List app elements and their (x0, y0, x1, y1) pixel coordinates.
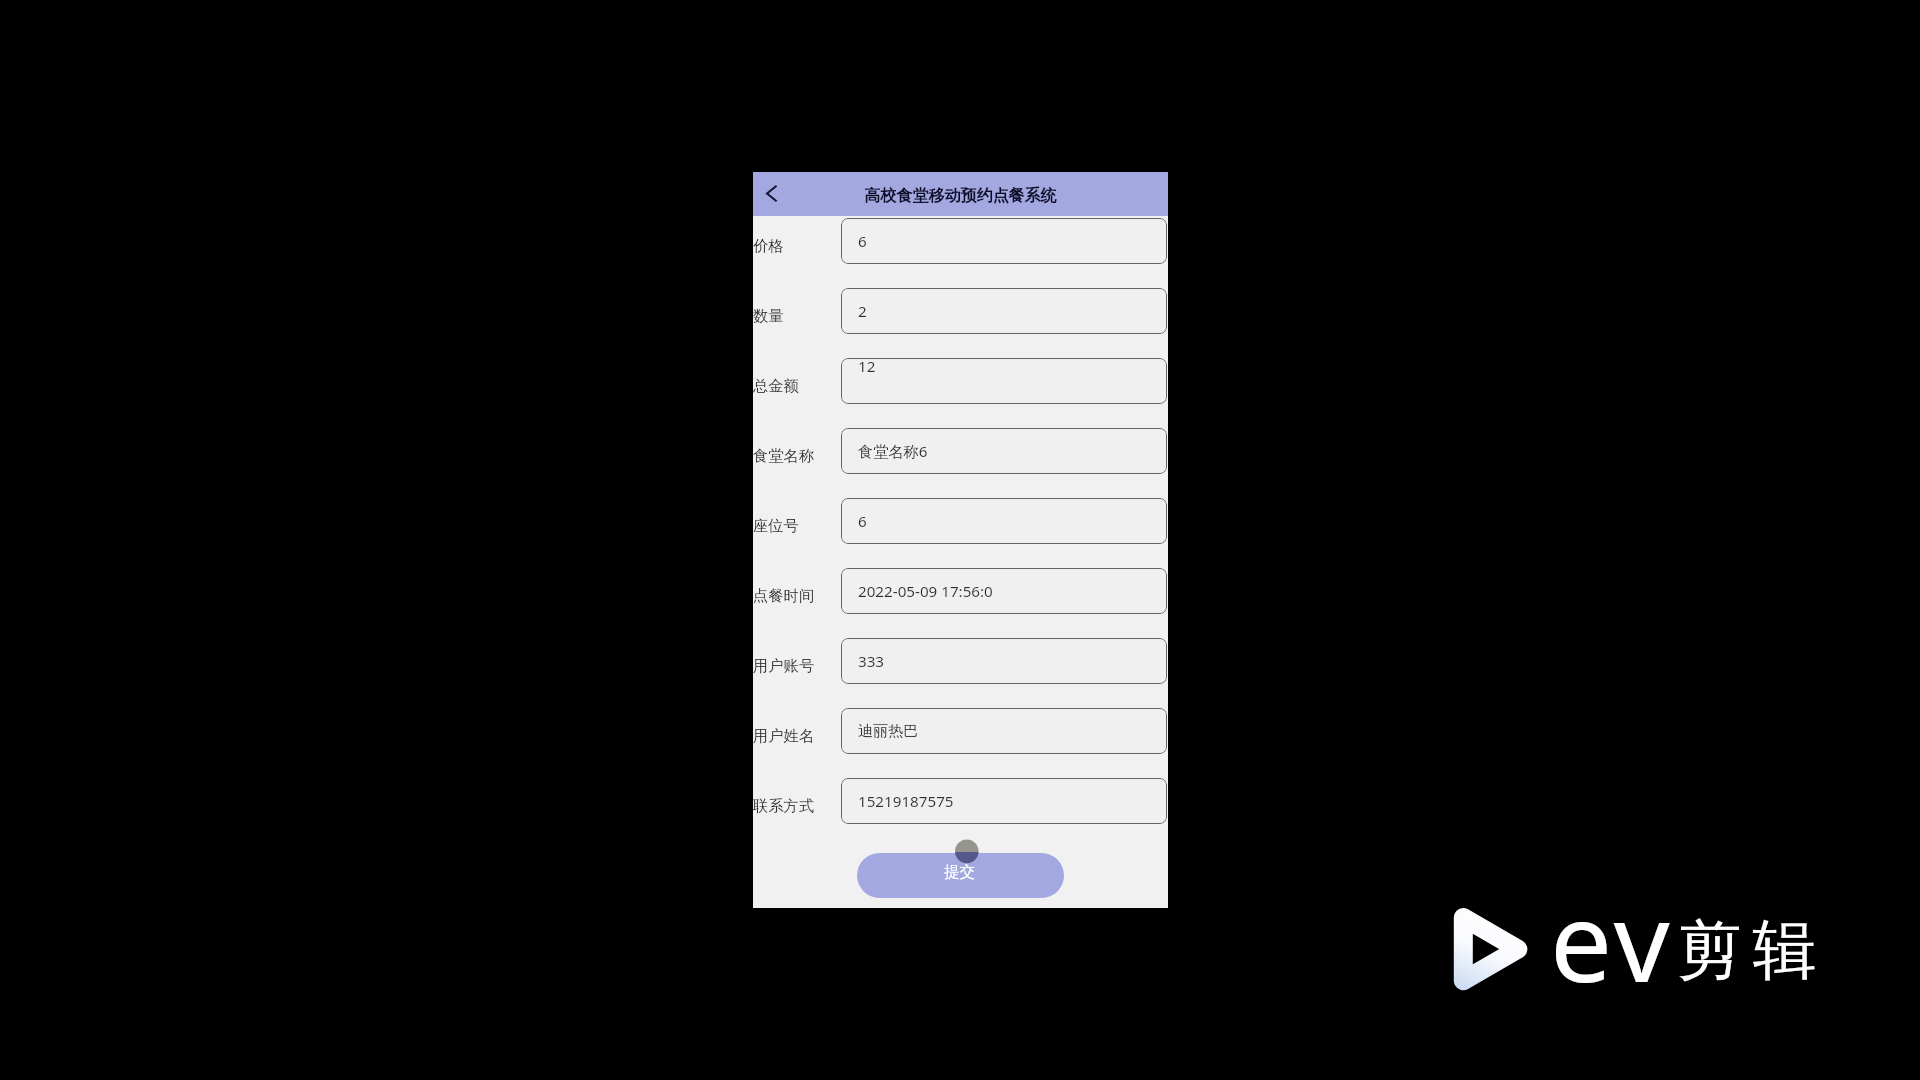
staticText: 333 (858, 651, 885, 672)
staticText: 点餐时间 (753, 586, 815, 605)
button[interactable]: 联系方式 (753, 778, 1168, 824)
button[interactable]: Back (756, 172, 792, 216)
staticText: ev (1550, 864, 1674, 1014)
button[interactable]: 座位号 (753, 498, 1168, 544)
staticText: 用户姓名 (753, 726, 815, 745)
staticText: 12 (858, 356, 876, 377)
button[interactable]: 总金额 (753, 358, 1168, 404)
button[interactable]: 用户账号 (753, 638, 1168, 684)
staticText: 提交 (857, 862, 1063, 882)
staticText: 6 (858, 511, 867, 532)
staticText: 2 (858, 301, 867, 322)
button[interactable]: 数量 (753, 288, 1168, 334)
staticText: 剪辑 (1672, 910, 1822, 991)
staticText: 座位号 (753, 516, 799, 535)
staticText: 15219187575 (858, 791, 954, 812)
staticText: 6 (858, 231, 867, 252)
button[interactable]: 价格 (753, 218, 1168, 264)
button[interactable]: Touch point (943, 827, 991, 875)
staticText: 高校食堂移动预约点餐系统 (753, 186, 1168, 206)
staticText: 用户账号 (753, 656, 815, 675)
staticText: 食堂名称 (753, 446, 815, 465)
staticText: 联系方式 (753, 796, 815, 815)
staticText: 数量 (753, 306, 784, 325)
staticText: 价格 (753, 236, 784, 255)
button[interactable]: 点餐时间 (753, 568, 1168, 614)
button[interactable]: 用户姓名 (753, 708, 1168, 754)
staticText: 食堂名称6 (858, 441, 928, 462)
staticText: 总金额 (753, 376, 799, 395)
button[interactable]: 食堂名称 (753, 428, 1168, 474)
button[interactable]: 提交 (857, 853, 1064, 898)
staticText: 迪丽热巴 (858, 721, 919, 740)
staticText: 2022-05-09 17:56:0 (858, 581, 993, 602)
